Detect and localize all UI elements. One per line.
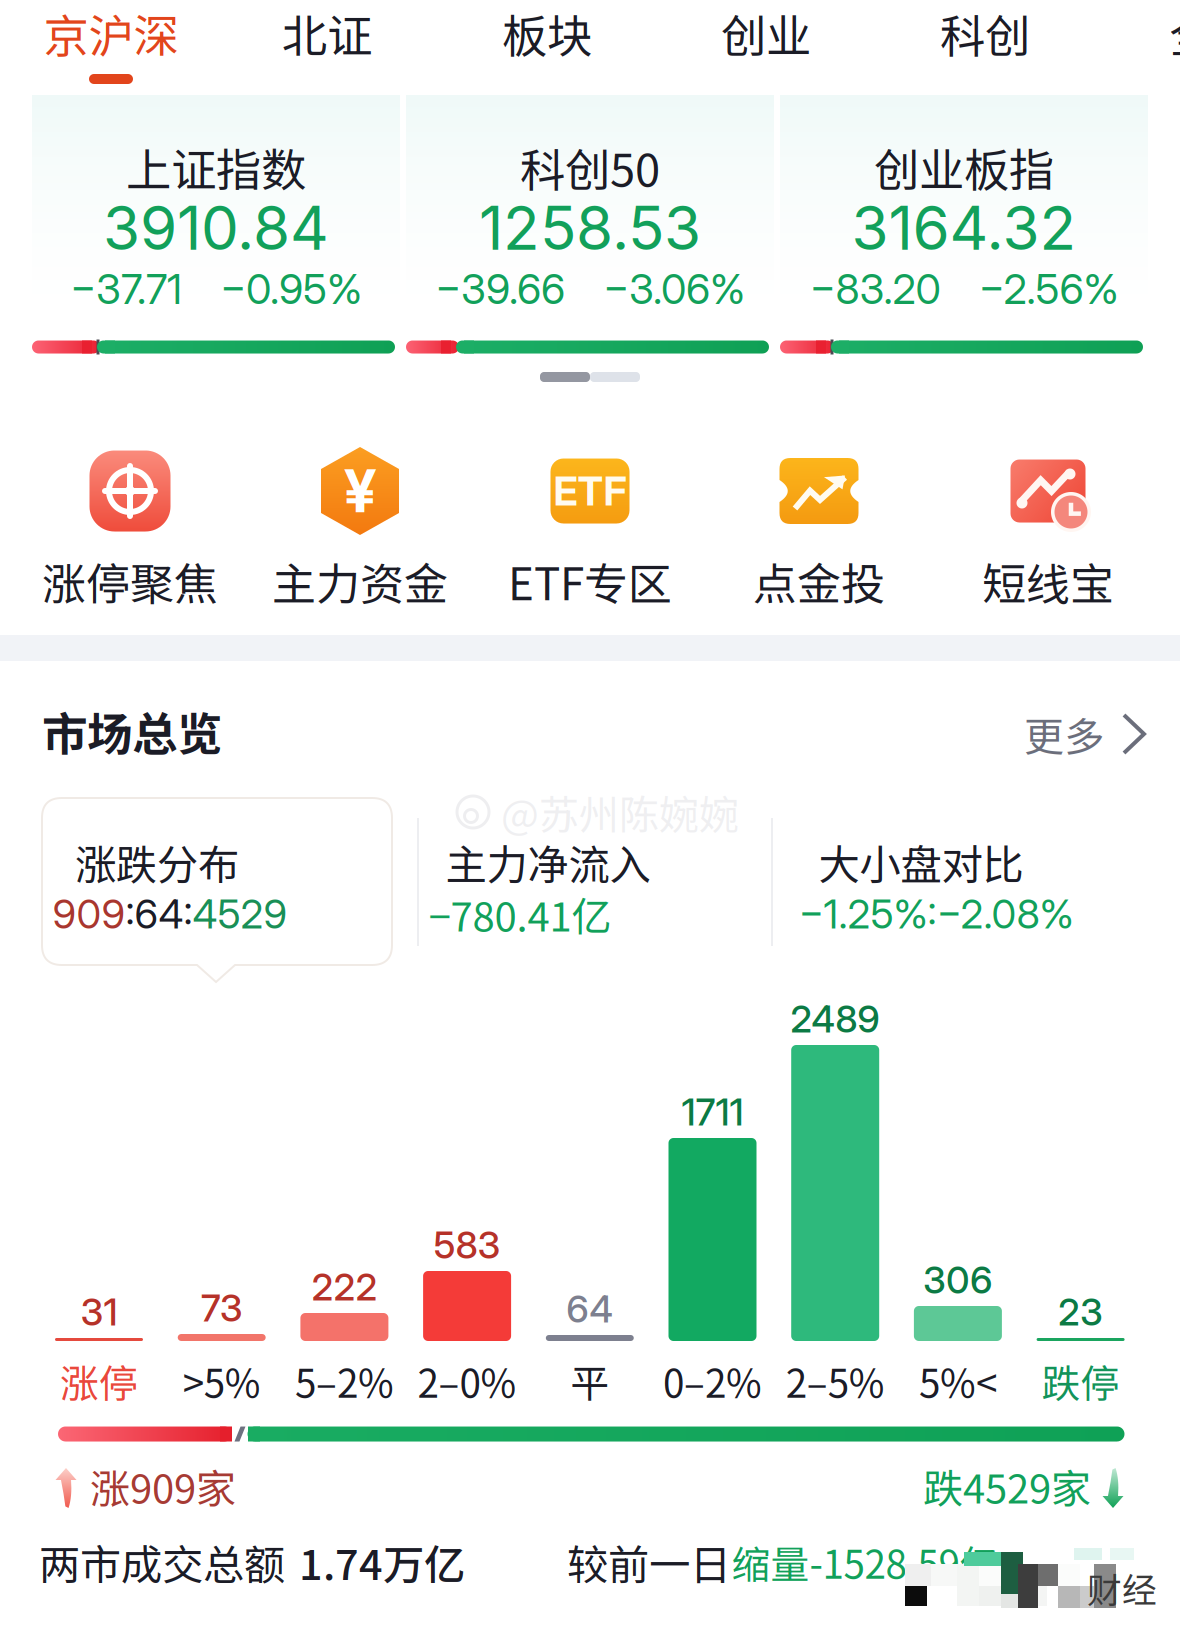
button[interactable]: 创业 [666, 0, 866, 93]
button[interactable]: 科创 [885, 0, 1085, 93]
staticText: 2–0% [418, 1353, 517, 1409]
staticText: 3164.32 [851, 192, 1076, 264]
staticText: −37.71 [70, 264, 182, 314]
staticText: ¥ [343, 455, 376, 526]
staticText: 0–2% [663, 1353, 762, 1409]
staticText: 31 [80, 1289, 117, 1335]
staticText: 222 [311, 1264, 377, 1310]
staticText: >5% [183, 1353, 261, 1409]
button[interactable]: 点金投 [709, 445, 929, 615]
staticText: 科创 [940, 0, 1030, 66]
staticText: 两市成交总额 [39, 1532, 285, 1592]
staticText: −3.06% [603, 264, 745, 314]
button[interactable]: ETF [480, 445, 700, 615]
staticText: :64: [125, 890, 192, 938]
staticText: 1258.53 [479, 192, 701, 264]
staticText: 缩量-1528.59亿 [731, 1534, 998, 1590]
staticText: 大小盘对比 [818, 832, 1023, 892]
button[interactable]: 创业板指 [780, 95, 1148, 307]
staticText: 较前一日 [567, 1532, 731, 1592]
staticText: 市场总览 [42, 698, 222, 764]
staticText: 1711 [681, 1089, 743, 1135]
button[interactable]: 北证 [227, 0, 427, 93]
staticText: @苏州陈婉婉 [501, 783, 739, 841]
staticText: 涨停 [60, 1353, 138, 1409]
staticText: 64 [566, 1286, 613, 1332]
staticText: 创业板指 [874, 134, 1054, 200]
staticText: 板块 [502, 0, 592, 66]
staticText: −2.56% [978, 264, 1118, 314]
button[interactable]: 短线宝 [938, 445, 1158, 615]
staticText: 73 [201, 1285, 243, 1331]
button[interactable]: 板块 [447, 0, 647, 93]
staticText: 财经 [1087, 1563, 1157, 1613]
staticText: 主力资金 [272, 549, 448, 613]
staticText: 主力净流入 [445, 832, 650, 892]
staticText: −0.95% [220, 264, 362, 314]
button[interactable]: 全 [1092, 0, 1180, 93]
staticText: −83.20 [809, 264, 940, 314]
staticText: 北证 [282, 0, 372, 66]
staticText: 京沪深 [43, 0, 178, 66]
staticText: 306 [923, 1257, 993, 1303]
staticText: 2–5% [786, 1353, 885, 1409]
staticText: ETF [553, 467, 626, 515]
staticText: 3910.84 [103, 192, 329, 264]
staticText: −39.66 [435, 264, 565, 314]
staticText: 4529 [192, 890, 287, 938]
staticText: 涨909家 [90, 1457, 236, 1515]
staticText: 909 [52, 890, 125, 938]
staticText: 跌4529家 [923, 1457, 1091, 1515]
button[interactable]: ¥ [250, 445, 470, 615]
staticText: 583 [434, 1222, 501, 1268]
staticText: 平 [570, 1353, 609, 1409]
staticText: −780.41亿 [428, 885, 611, 943]
staticText: 5%< [919, 1353, 997, 1409]
staticText: ETF专区 [508, 549, 672, 613]
staticText: 23 [1058, 1289, 1103, 1335]
staticText: 科创50 [520, 134, 660, 200]
button[interactable]: 科创50 [406, 95, 774, 307]
staticText: 短线宝 [982, 549, 1114, 613]
staticText: 上证指数 [126, 134, 306, 200]
staticText: −1.25%:−2.08% [798, 890, 1073, 938]
staticText: 涨跌分布 [75, 832, 239, 892]
staticText: 点金投 [753, 549, 885, 613]
staticText: 2489 [790, 996, 880, 1042]
button[interactable]: 京沪深 [11, 0, 211, 93]
staticText: 创业 [721, 0, 811, 66]
staticText: 更多 [1024, 705, 1104, 763]
staticText: 跌停 [1042, 1353, 1120, 1409]
staticText: 涨停聚焦 [42, 549, 218, 613]
button[interactable]: 上证指数 [32, 95, 400, 307]
staticText: 全 [1169, 0, 1180, 66]
button[interactable]: 更多 [1008, 689, 1160, 779]
staticText: 1.74万亿 [299, 1532, 465, 1592]
button[interactable]: 涨停聚焦 [20, 445, 240, 615]
staticText: 5–2% [295, 1353, 394, 1409]
